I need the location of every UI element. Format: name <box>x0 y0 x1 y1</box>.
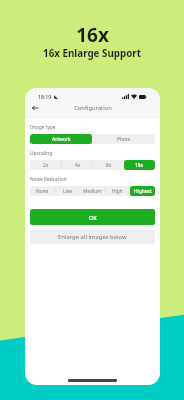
staticText: Highest <box>134 188 152 195</box>
button[interactable]: 4x <box>62 160 93 170</box>
staticText: 18:19 <box>38 93 52 100</box>
staticText: None <box>36 188 49 195</box>
button[interactable]: Highest <box>130 186 155 196</box>
button[interactable]: Low <box>55 186 80 196</box>
staticText: High <box>112 188 123 195</box>
staticText: 4x <box>75 162 81 169</box>
button[interactable]: OK <box>30 209 155 225</box>
staticText: Medium <box>83 188 102 195</box>
staticText: Noise Reduction <box>30 176 67 183</box>
button[interactable]: Photo <box>92 134 155 144</box>
staticText: Image type <box>30 124 56 131</box>
staticText: 8x <box>106 162 112 169</box>
staticText: Artwork <box>52 136 71 143</box>
staticText: Enlarge all images below <box>58 233 127 241</box>
button[interactable]: 16x <box>124 160 155 170</box>
button[interactable]: Back <box>27 100 42 115</box>
staticText: 2x <box>43 162 49 169</box>
staticText: OK <box>89 214 97 221</box>
button[interactable]: Medium <box>80 186 105 196</box>
button[interactable]: Artwork <box>30 134 92 144</box>
button[interactable]: High <box>105 186 130 196</box>
button[interactable]: Enlarge all images below <box>30 230 155 244</box>
button[interactable]: None <box>30 186 55 196</box>
staticText: 16x <box>135 162 144 169</box>
staticText: Photo <box>117 136 131 143</box>
staticText: Low <box>63 188 73 195</box>
button[interactable]: 2x <box>30 160 62 170</box>
staticText: 16x Enlarge Support <box>43 47 141 60</box>
staticText: Upscaling <box>30 150 53 157</box>
button[interactable]: 8x <box>93 160 124 170</box>
staticText: Configuration <box>74 104 112 112</box>
staticText: 16x <box>76 22 109 48</box>
